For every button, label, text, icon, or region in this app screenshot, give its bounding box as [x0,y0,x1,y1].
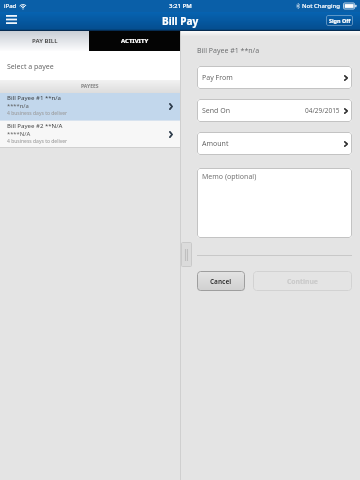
staticText: ****n/a [7,102,29,110]
staticText: Bill Payee #1 **n/a [197,46,260,56]
staticText: PAYEES [81,83,99,90]
staticText: PAY BILL [32,37,58,45]
button[interactable]: Send On [197,99,352,122]
button[interactable]: Bill Payee #1 **n/a [0,93,180,120]
button[interactable]: Memo (optional) [197,168,352,238]
button[interactable]: ACTIVITY [89,31,180,51]
button[interactable]: Sign Off [326,15,353,26]
staticText: Bill Payee #2 **N/A [7,122,63,130]
button[interactable]: Bill Payee #2 **N/A [0,121,180,147]
staticText: 04/29/2015 [305,106,340,115]
button[interactable]: Continue [253,271,352,291]
button[interactable]: Amount [197,132,352,155]
staticText: Send On [202,106,231,116]
button[interactable]: Menu [1,10,21,29]
staticText: ****N/A [7,130,31,138]
button[interactable]: Pay From [197,66,352,89]
staticText: Not Charging [302,2,340,10]
staticText: Sign Off [329,17,351,24]
staticText: ACTIVITY [121,37,149,45]
staticText: 4 business days to deliver [7,138,68,145]
staticText: Select a payee [7,62,54,72]
button[interactable]: Resize panel [181,242,192,267]
staticText: 4 business days to deliver [7,110,68,117]
staticText: Continue [287,277,318,286]
staticText: Memo (optional) [202,172,257,182]
button[interactable]: PAY BILL [0,31,89,51]
button[interactable]: Cancel [197,271,245,291]
staticText: Bill Pay [162,14,199,28]
staticText: 3:21 PM [169,2,192,10]
staticText: Bill Payee #1 **n/a [7,94,62,102]
staticText: Amount [202,139,229,149]
staticText: Cancel [210,277,232,286]
staticText: Pay From [202,73,233,83]
staticText: iPad [4,2,17,10]
